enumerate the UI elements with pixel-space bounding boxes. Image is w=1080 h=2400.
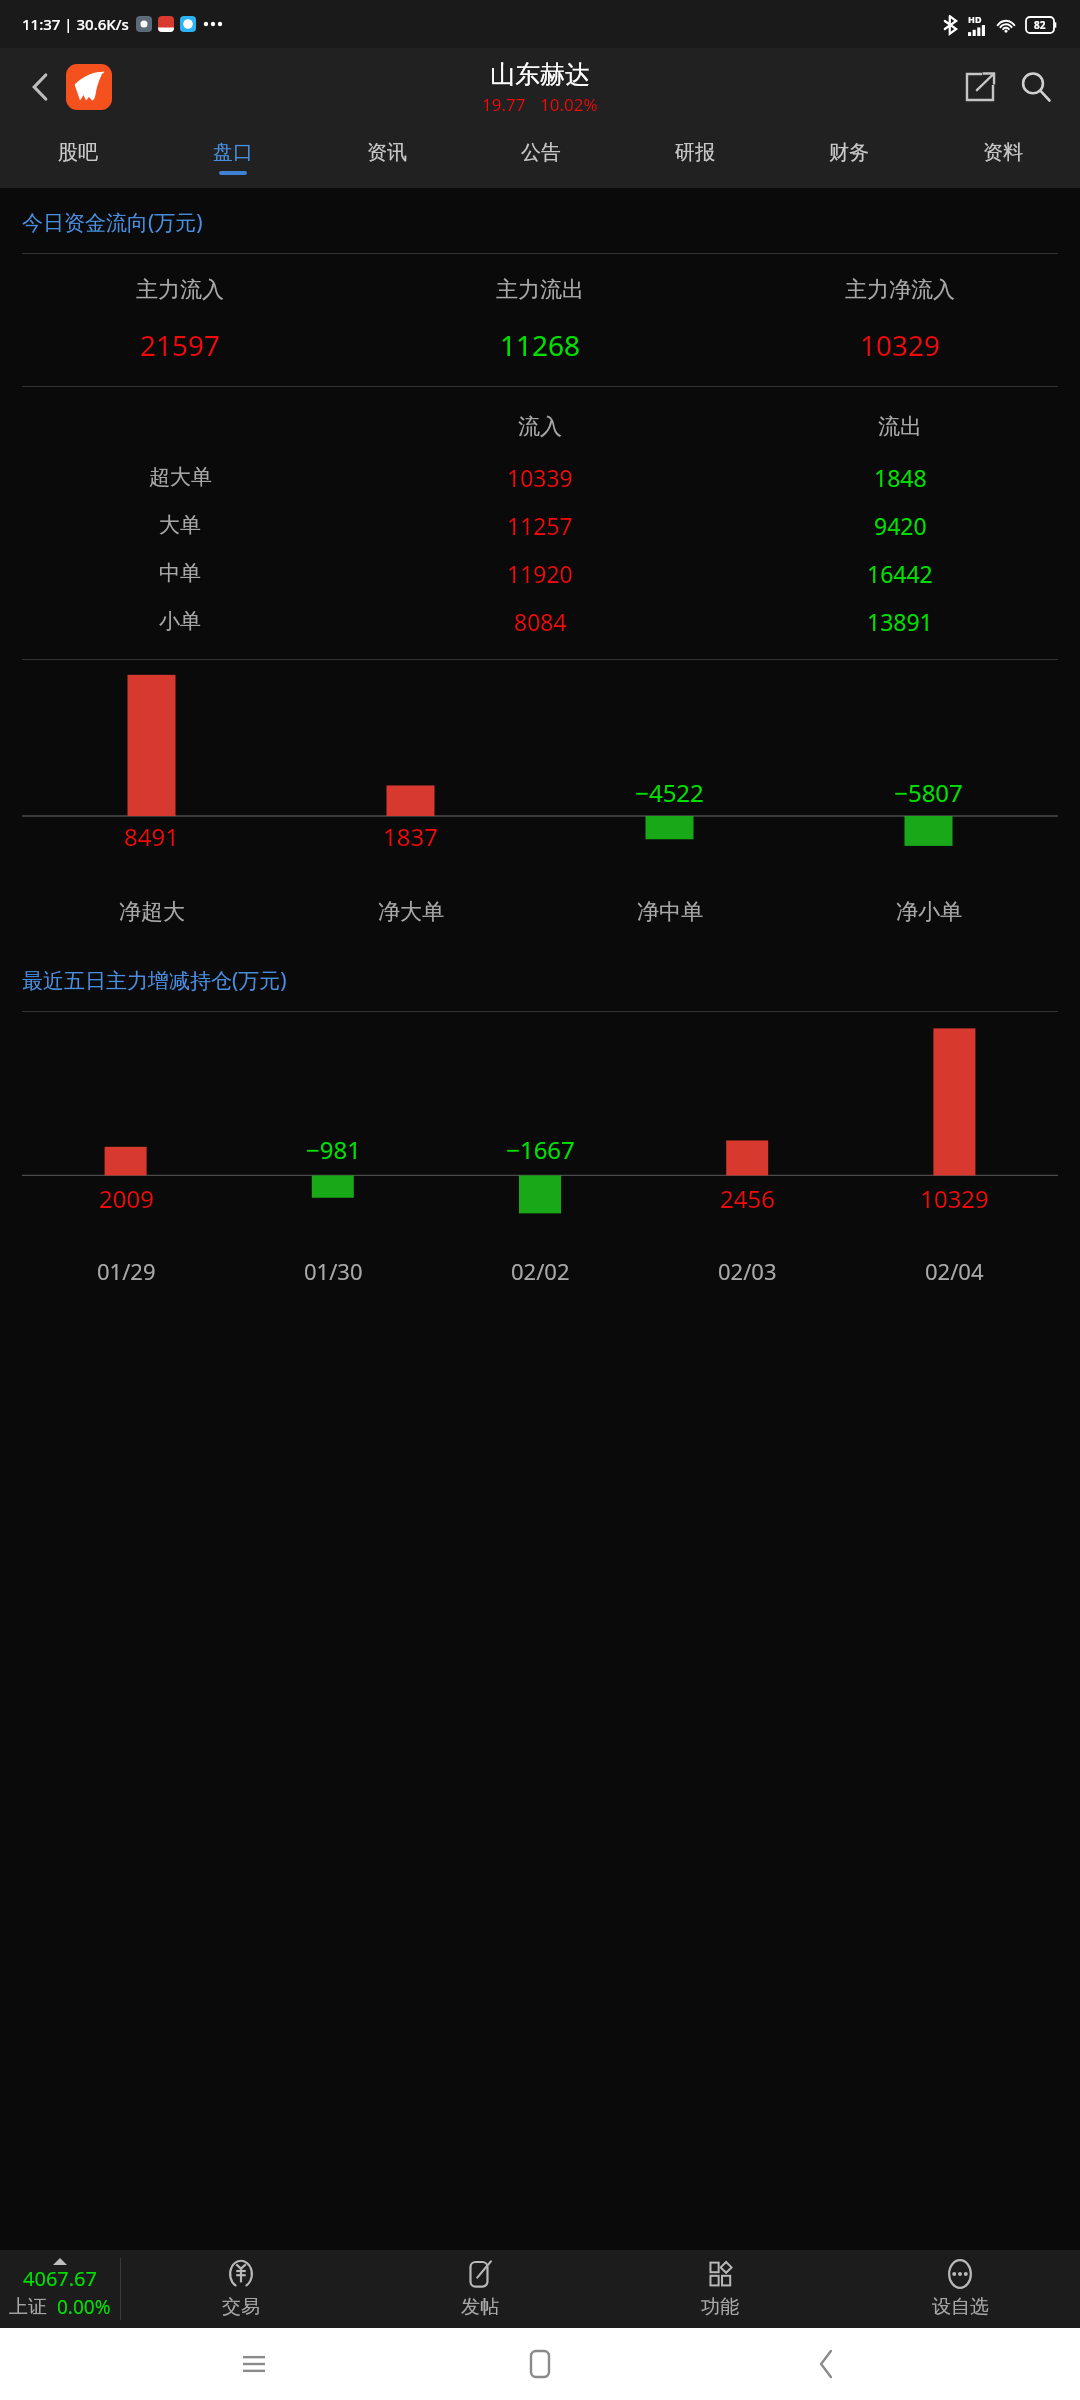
staticText: 11:37 | 30.6K/s: [22, 14, 129, 34]
button[interactable]: 交易: [121, 2250, 360, 2328]
staticText: 21597: [140, 326, 221, 364]
staticText: 发帖: [461, 2295, 499, 2319]
staticText: 公告: [521, 140, 561, 165]
staticText: 2009: [99, 1182, 154, 1215]
staticText: 11920: [507, 558, 573, 589]
staticText: 11257: [507, 510, 573, 541]
staticText: −5807: [894, 776, 963, 809]
button[interactable]: Search: [1012, 63, 1060, 111]
staticText: 山东赫达: [490, 59, 590, 90]
button[interactable]: 盘口: [155, 126, 310, 188]
staticText: 流出: [878, 413, 922, 441]
staticText: 超大单: [149, 464, 212, 490]
button[interactable]: App logo: [66, 64, 112, 110]
button[interactable]: Recents: [222, 2332, 286, 2396]
staticText: 10329: [860, 326, 941, 364]
staticText: 净大单: [378, 898, 444, 926]
staticText: 13891: [867, 606, 933, 637]
staticText: 1837: [383, 820, 438, 853]
staticText: 主力流入: [136, 276, 224, 304]
staticText: 10329: [920, 1182, 989, 1215]
staticText: 8491: [124, 820, 179, 853]
staticText: 盘口: [213, 140, 253, 165]
button[interactable]: 资讯: [310, 126, 464, 188]
staticText: 主力流出: [496, 276, 584, 304]
staticText: 资料: [983, 140, 1023, 165]
staticText: 16442: [867, 558, 933, 589]
button[interactable]: 财务: [772, 126, 926, 188]
staticText: 10.02%: [540, 93, 598, 116]
staticText: 19.77: [482, 93, 526, 116]
staticText: 主力净流入: [845, 276, 955, 304]
staticText: 功能: [701, 2295, 739, 2319]
staticText: −981: [306, 1133, 361, 1166]
staticText: −4522: [635, 776, 704, 809]
staticText: 大单: [159, 512, 201, 538]
staticText: 82: [1034, 18, 1046, 32]
staticText: 财务: [829, 140, 869, 165]
staticText: 中单: [159, 560, 201, 586]
button[interactable]: Home: [508, 2332, 572, 2396]
staticText: 02/04: [925, 1256, 984, 1286]
staticText: 净小单: [896, 898, 962, 926]
staticText: 1848: [874, 462, 927, 493]
staticText: 最近五日主力增减持仓(万元): [22, 966, 287, 995]
staticText: 02/02: [511, 1256, 570, 1286]
staticText: 02/03: [718, 1256, 777, 1286]
staticText: 10339: [507, 462, 573, 493]
staticText: 4067.67: [23, 2265, 97, 2292]
staticText: 研报: [675, 140, 715, 165]
staticText: 净中单: [637, 898, 703, 926]
staticText: HD: [968, 13, 982, 25]
staticText: 8084: [514, 606, 567, 637]
button[interactable]: 设自选: [840, 2250, 1080, 2328]
button[interactable]: Back: [18, 65, 62, 109]
staticText: 9420: [874, 510, 927, 541]
button[interactable]: 股吧: [0, 126, 155, 188]
staticText: 11268: [500, 326, 581, 364]
staticText: 01/29: [97, 1256, 156, 1286]
button[interactable]: 功能: [600, 2250, 840, 2328]
staticText: 01/30: [304, 1256, 363, 1286]
staticText: 股吧: [58, 140, 98, 165]
staticText: 设自选: [932, 2295, 989, 2319]
button[interactable]: 发帖: [360, 2250, 600, 2328]
staticText: 小单: [159, 608, 201, 634]
staticText: 流入: [518, 413, 562, 441]
button[interactable]: Share: [956, 63, 1004, 111]
button[interactable]: 公告: [464, 126, 618, 188]
button[interactable]: 4067.67: [0, 2250, 120, 2328]
button[interactable]: 资料: [926, 126, 1080, 188]
staticText: 资讯: [367, 140, 407, 165]
staticText: 今日资金流向(万元): [22, 208, 203, 237]
staticText: 净超大: [119, 898, 185, 926]
staticText: 交易: [222, 2295, 260, 2319]
staticText: −1667: [506, 1133, 575, 1166]
button[interactable]: 研报: [618, 126, 772, 188]
staticText: 上证: [9, 2295, 47, 2319]
staticText: 0.00%: [57, 2294, 111, 2320]
staticText: 2456: [720, 1182, 775, 1215]
button[interactable]: Back: [794, 2332, 858, 2396]
